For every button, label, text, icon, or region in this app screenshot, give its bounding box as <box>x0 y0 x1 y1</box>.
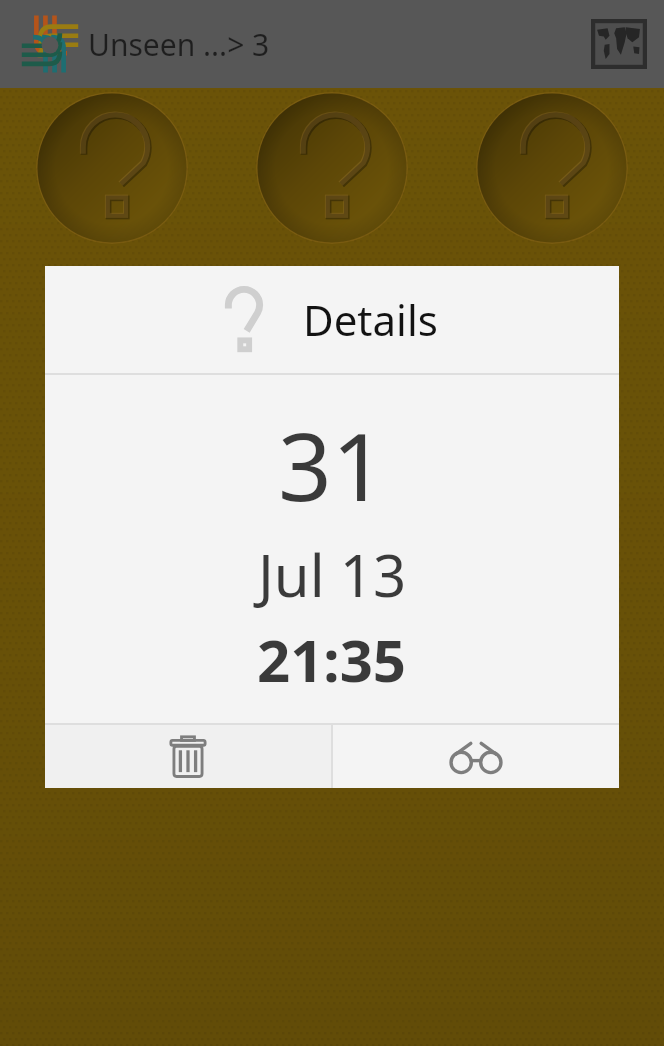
staticText: Unseen ...> 3 <box>88 24 270 65</box>
button[interactable]: Add complication <box>36 92 188 244</box>
button[interactable]: Add complication <box>476 92 628 244</box>
button[interactable]: Add complication <box>256 92 408 244</box>
button[interactable]: Mark as seen <box>333 725 619 788</box>
staticText: 31 <box>278 401 386 529</box>
staticText: Jul 13 <box>258 535 407 614</box>
button[interactable]: World map <box>590 15 648 73</box>
staticText: 21:35 <box>257 620 407 699</box>
button[interactable]: Delete <box>45 725 331 788</box>
staticText: Details <box>303 291 438 348</box>
